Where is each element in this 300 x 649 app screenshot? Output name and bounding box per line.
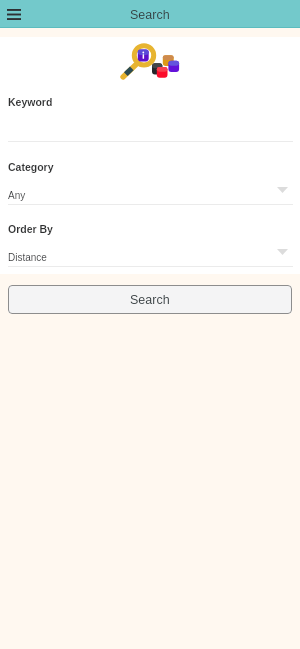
- staticText: Category: [8, 161, 54, 173]
- staticText: Keyword: [8, 96, 53, 108]
- staticText: Search: [130, 8, 170, 22]
- button[interactable]: Open navigation menu: [3, 3, 25, 25]
- staticText: Any: [8, 190, 26, 201]
- button[interactable]: Distance: [0, 246, 300, 262]
- button[interactable]: Any: [0, 184, 300, 200]
- button[interactable]: Search: [8, 285, 292, 314]
- staticText: Distance: [8, 252, 47, 263]
- staticText: Order By: [8, 223, 53, 235]
- staticText: Search: [130, 293, 170, 307]
